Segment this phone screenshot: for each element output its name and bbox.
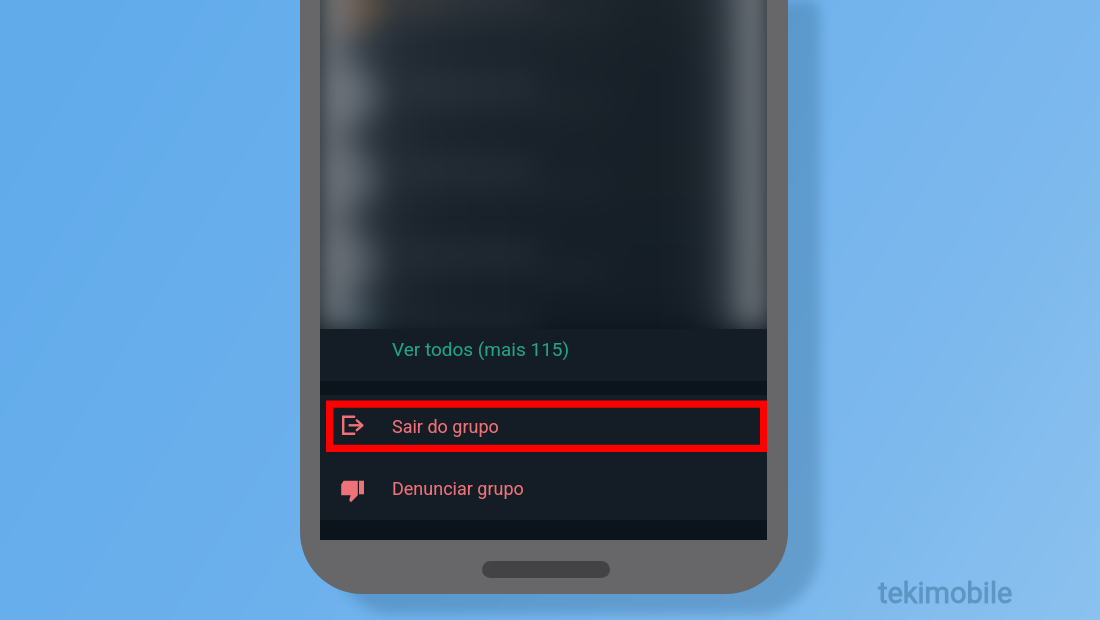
button[interactable]: Sair do grupo	[320, 395, 767, 457]
button[interactable]: Ver todos (mais 115)	[320, 329, 767, 381]
button[interactable]: Denunciar grupo	[320, 457, 767, 520]
staticText: Denunciar grupo	[392, 478, 524, 499]
staticText: tekimobile	[878, 576, 1013, 610]
staticText: Sair do grupo	[392, 416, 499, 437]
staticText: Ver todos (mais 115)	[392, 338, 570, 360]
